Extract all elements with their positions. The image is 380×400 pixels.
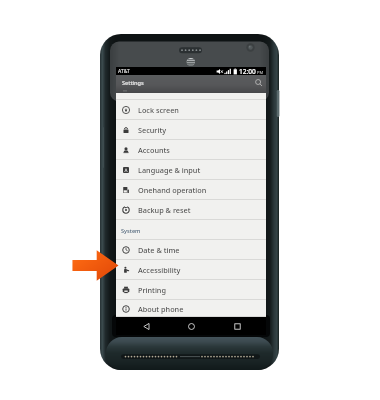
staticText: Backup & reset [138,205,191,215]
button[interactable]: Recent apps [221,317,253,335]
staticText: System [121,227,141,235]
button[interactable]: Language & input [116,160,266,180]
staticText: Accessibility [138,265,181,275]
button[interactable]: Backup & reset [116,200,266,220]
staticText: PM [257,70,264,75]
button[interactable]: Printing [116,280,266,300]
button[interactable]: Onehand operation [116,180,266,200]
staticText: About phone [138,304,184,314]
staticText: Security [138,125,167,135]
staticText: Lock screen [138,105,179,115]
button[interactable]: Search [252,76,266,90]
staticText: 12:00 [239,67,256,75]
staticText: Onehand operation [138,185,207,195]
button[interactable]: Home [175,317,207,335]
button[interactable]: Back [130,317,162,335]
staticText: Language & input [138,165,201,175]
button[interactable]: Lock screen [116,100,266,120]
button[interactable]: About phone [116,300,266,317]
staticText: AT&T [118,68,130,75]
staticText: Printing [138,285,166,295]
staticText: Settings [122,79,144,87]
button[interactable]: Accounts [116,140,266,160]
staticText: Date & time [138,245,180,255]
staticText: Accounts [138,145,170,155]
button[interactable]: Security [116,120,266,140]
button[interactable]: Date & time [116,240,266,260]
button[interactable]: Accessibility [116,260,266,280]
